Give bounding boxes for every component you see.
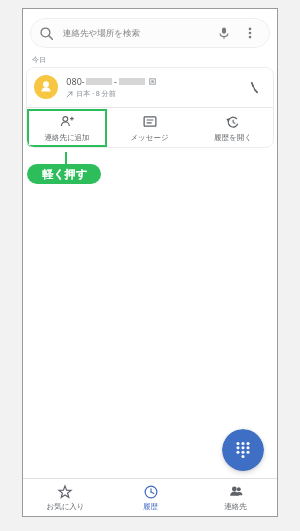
staticText: 履歴を開く <box>214 133 252 142</box>
staticText: 日本 · 8 分前 <box>76 89 116 99</box>
button[interactable]: More options <box>240 23 260 43</box>
button[interactable]: Voice search <box>214 23 234 43</box>
staticText: 連絡先 <box>224 502 247 511</box>
button[interactable]: 連絡先や場所を検索 <box>30 18 270 48</box>
button[interactable]: Dialpad <box>222 429 264 471</box>
button[interactable]: お気に入り <box>22 479 108 517</box>
staticText: お気に入り <box>46 502 85 511</box>
button[interactable]: 履歴 <box>108 479 193 517</box>
button[interactable]: 連絡先に追加 <box>27 109 107 147</box>
staticText: 連絡先に追加 <box>44 133 90 142</box>
staticText: 軽く押す <box>42 167 87 181</box>
staticText: 080- <box>66 75 85 87</box>
button[interactable]: 080- <box>26 67 274 107</box>
staticText: 連絡先や場所を検索 <box>63 28 140 39</box>
staticText: 今日 <box>32 55 46 64</box>
staticText: メッセージ <box>130 133 169 142</box>
button[interactable]: Call <box>242 75 266 99</box>
button[interactable]: 履歴を開く <box>191 108 274 148</box>
button[interactable]: 連絡先 <box>193 479 278 517</box>
button[interactable]: メッセージ <box>108 108 191 148</box>
staticText: - <box>114 75 117 87</box>
staticText: 履歴 <box>143 502 158 511</box>
